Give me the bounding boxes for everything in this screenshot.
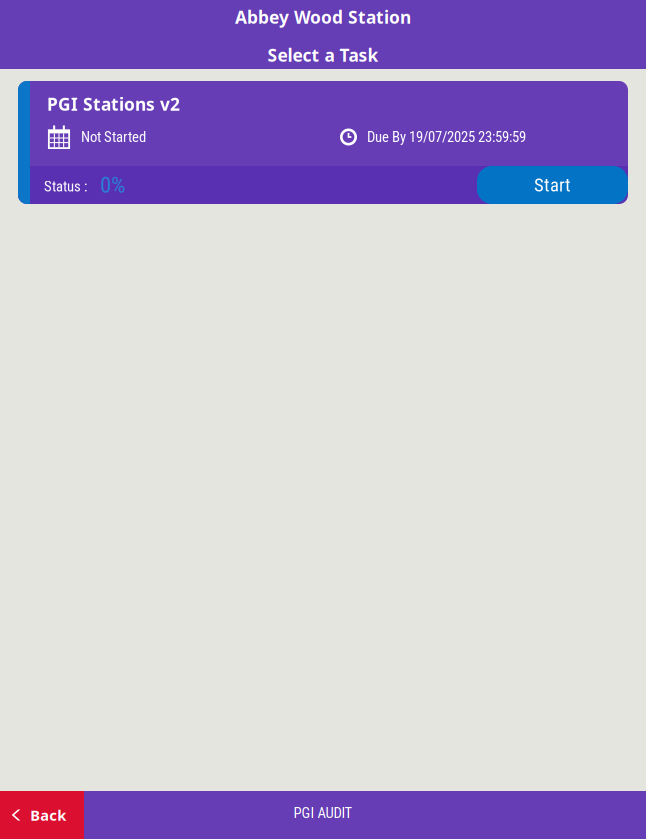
- staticText: Status :: [44, 178, 87, 195]
- staticText: Not Started: [81, 128, 146, 146]
- button[interactable]: PGI AUDIT: [243, 791, 403, 839]
- staticText: 0%: [100, 172, 125, 198]
- button[interactable]: Back: [0, 791, 84, 839]
- staticText: Due By 19/07/2025 23:59:59: [367, 128, 526, 146]
- staticText: Select a Task: [267, 43, 378, 67]
- staticText: Abbey Wood Station: [235, 5, 411, 29]
- staticText: PGI AUDIT: [293, 804, 352, 822]
- staticText: Back: [30, 805, 66, 825]
- button[interactable]: Start: [477, 166, 628, 204]
- staticText: PGI Stations v2: [47, 92, 180, 116]
- staticText: Start: [534, 174, 571, 196]
